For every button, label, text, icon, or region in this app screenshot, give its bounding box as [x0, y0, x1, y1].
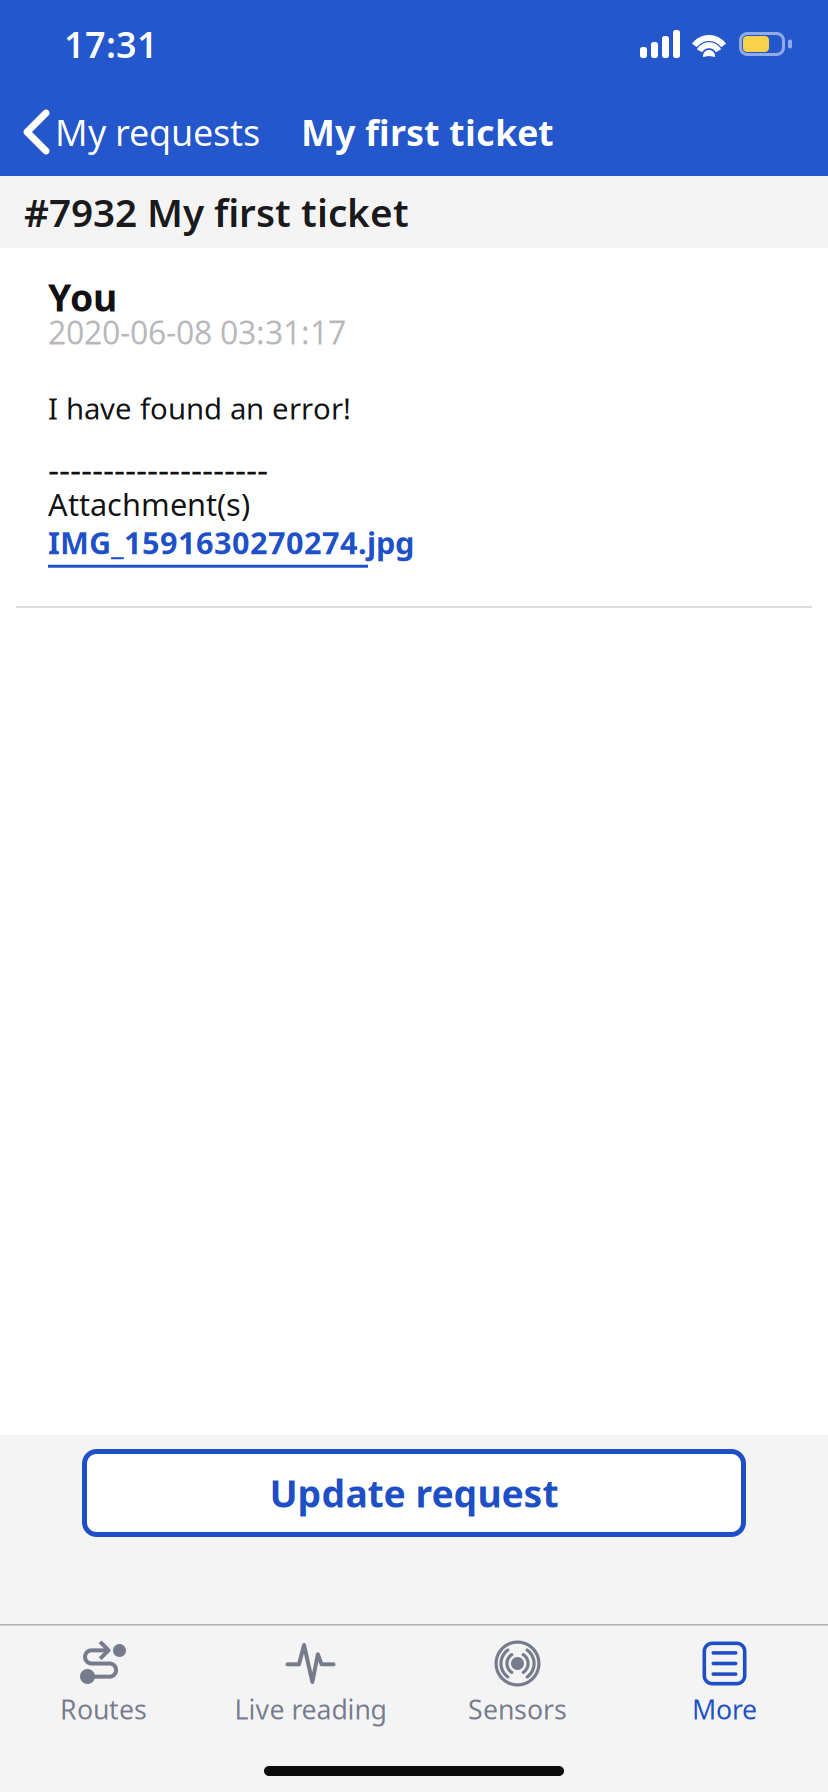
staticText: My first ticket	[301, 108, 554, 156]
button[interactable]: Sensors	[414, 1625, 621, 1737]
staticText: IMG_1591630270274.jpg	[48, 522, 414, 563]
button[interactable]: Routes	[0, 1625, 207, 1737]
staticText: Update request	[269, 1468, 558, 1518]
button[interactable]: More	[621, 1625, 828, 1737]
staticText: 17:31	[64, 20, 158, 68]
staticText: 2020-06-08 03:31:17	[48, 311, 346, 353]
button[interactable]: My requests	[0, 88, 270, 176]
staticText: Routes	[60, 1691, 147, 1727]
staticText: Attachment(s)	[48, 484, 250, 524]
staticText: #7932 My first ticket	[24, 186, 409, 238]
staticText: You	[48, 272, 117, 322]
staticText: My requests	[55, 108, 260, 156]
staticText: I have found an error!	[48, 388, 351, 427]
staticText: More	[692, 1691, 757, 1727]
button[interactable]: IMG_1591630270274.jpg	[48, 522, 414, 562]
button[interactable]: Update request	[82, 1449, 746, 1537]
staticText: Sensors	[468, 1691, 567, 1727]
button[interactable]: Live reading	[207, 1625, 414, 1737]
staticText: --------------------	[48, 446, 268, 492]
staticText: Live reading	[234, 1691, 386, 1727]
